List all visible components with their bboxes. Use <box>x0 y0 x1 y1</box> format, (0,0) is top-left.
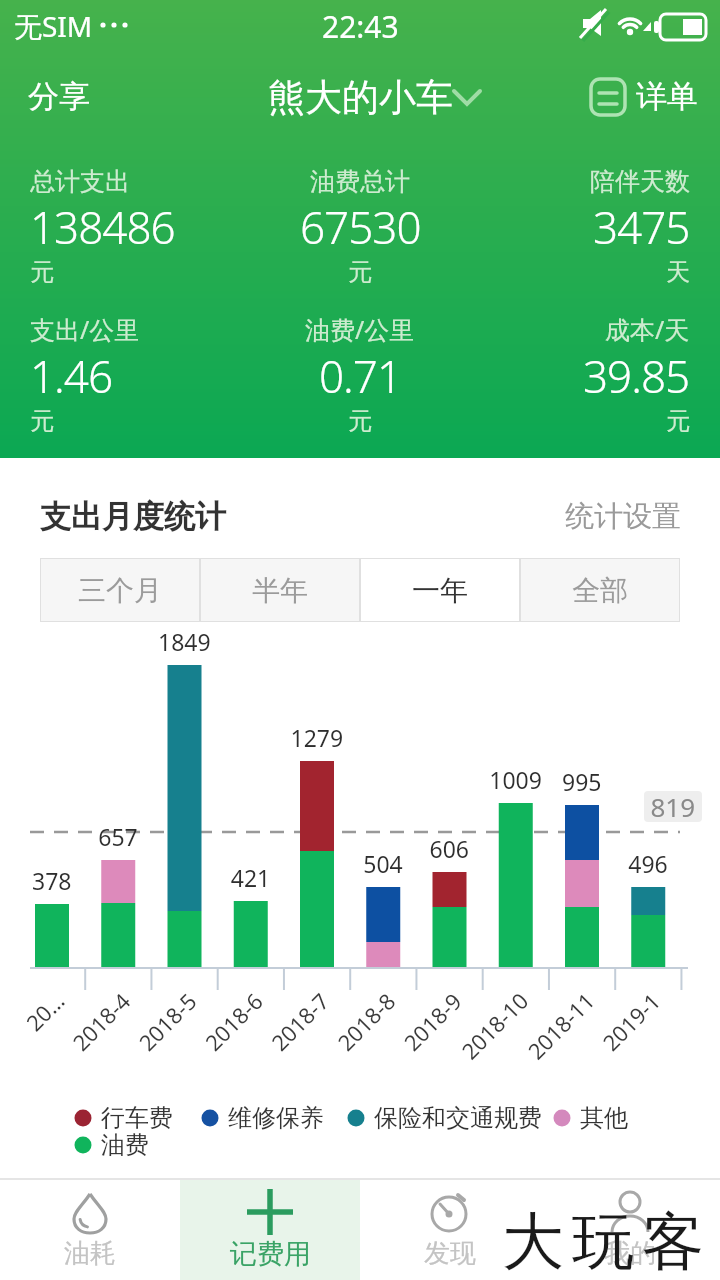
button[interactable]: 三个月 <box>40 558 200 622</box>
staticText: 成本/天 <box>605 312 690 346</box>
staticText: 记费用 <box>230 1237 311 1271</box>
staticText: 无SIM <box>14 7 93 45</box>
staticText: 一年 <box>412 573 468 608</box>
staticText: 39.85 <box>583 346 690 406</box>
button[interactable]: 一年 <box>360 558 520 622</box>
staticText: 元 <box>348 406 372 436</box>
staticText: 详单 <box>636 77 698 116</box>
staticText: 138486 <box>30 197 175 257</box>
staticText: 1.46 <box>30 346 113 406</box>
staticText: 统计设置 <box>565 498 681 535</box>
staticText: 半年 <box>252 573 308 608</box>
button[interactable]: 全部 <box>520 558 680 622</box>
staticText: 三个月 <box>78 573 162 608</box>
staticText: 发现 <box>424 1237 476 1270</box>
button[interactable]: 统计设置 <box>555 488 691 545</box>
staticText: 陪伴天数 <box>590 166 690 197</box>
staticText: 元 <box>30 406 54 436</box>
staticText: 油耗 <box>64 1237 116 1270</box>
staticText: 天 <box>666 257 690 287</box>
button[interactable]: 记费用 <box>180 1180 360 1280</box>
button[interactable]: 发现 <box>360 1180 540 1280</box>
button[interactable]: 半年 <box>200 558 360 622</box>
staticText: 我的 <box>604 1237 656 1270</box>
staticText: 元 <box>348 257 372 287</box>
staticText: 67530 <box>300 197 421 257</box>
button[interactable]: 详单 <box>584 68 704 125</box>
staticText: 油费/公里 <box>305 312 415 346</box>
staticText: 支出月度统计 <box>40 497 226 536</box>
staticText: 大玩客 <box>498 1203 708 1280</box>
staticText: 3475 <box>593 197 690 257</box>
staticText: 0.71 <box>319 346 402 406</box>
button[interactable]: 我的 <box>540 1180 720 1280</box>
staticText: 熊大的小车 <box>268 74 453 121</box>
staticText: 22:43 <box>322 6 399 47</box>
staticText: 分享 <box>28 77 90 116</box>
staticText: 元 <box>30 257 54 287</box>
button[interactable]: 熊大的小车 <box>228 74 493 121</box>
staticText: 油费总计 <box>310 166 410 197</box>
button[interactable]: 油耗 <box>0 1180 180 1280</box>
staticText: 总计支出 <box>30 166 130 197</box>
staticText: 全部 <box>572 573 628 608</box>
button[interactable]: 分享 <box>14 68 104 125</box>
staticText: 元 <box>666 406 690 436</box>
staticText: 支出/公里 <box>30 312 140 346</box>
